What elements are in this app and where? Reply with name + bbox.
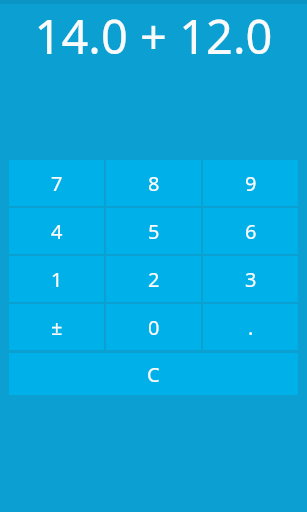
- button[interactable]: 6: [203, 208, 298, 254]
- button[interactable]: 2: [106, 256, 201, 302]
- button[interactable]: .: [203, 304, 298, 350]
- button[interactable]: 4: [9, 208, 104, 254]
- staticText: 8: [148, 170, 160, 197]
- staticText: 3: [245, 266, 257, 293]
- button[interactable]: 8: [106, 160, 201, 206]
- staticText: 14.0 + 12.0: [0, 4, 307, 68]
- staticText: 4: [51, 218, 63, 245]
- button[interactable]: 9: [203, 160, 298, 206]
- staticText: C: [147, 361, 160, 388]
- staticText: 6: [245, 218, 257, 245]
- staticText: 1: [51, 266, 63, 293]
- staticText: 9: [245, 170, 257, 197]
- staticText: ±: [51, 314, 63, 341]
- staticText: 2: [148, 266, 160, 293]
- staticText: 0: [148, 314, 160, 341]
- staticText: .: [248, 314, 254, 341]
- staticText: 5: [148, 218, 160, 245]
- button[interactable]: Clear: [9, 353, 298, 395]
- button[interactable]: 7: [9, 160, 104, 206]
- staticText: 7: [51, 170, 63, 197]
- button[interactable]: 3: [203, 256, 298, 302]
- button[interactable]: 0: [106, 304, 201, 350]
- button[interactable]: ±: [9, 304, 104, 350]
- button[interactable]: 5: [106, 208, 201, 254]
- button[interactable]: 1: [9, 256, 104, 302]
